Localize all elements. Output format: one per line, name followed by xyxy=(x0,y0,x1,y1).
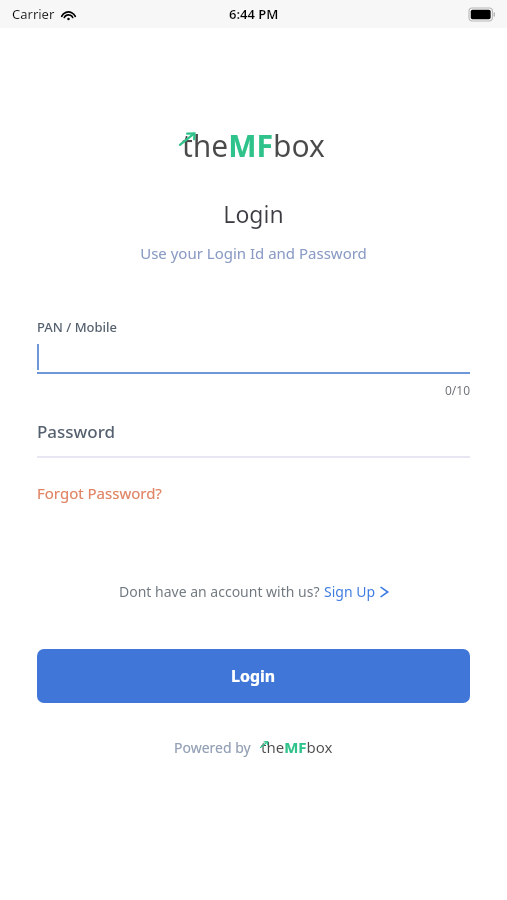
button[interactable]: Login xyxy=(37,649,470,703)
staticText: Carrier xyxy=(12,5,55,23)
button[interactable]: Password xyxy=(37,414,470,448)
staticText: theMFbox xyxy=(261,737,333,757)
staticText: Login xyxy=(0,198,507,229)
button[interactable] xyxy=(37,342,470,372)
staticText: Password xyxy=(37,420,116,443)
staticText: Login xyxy=(231,665,276,687)
staticText: 0/10 xyxy=(37,382,470,398)
button[interactable]: Dont have an account with us? xyxy=(0,578,507,605)
staticText: Sign Up xyxy=(324,582,376,601)
staticText: Use your Login Id and Password xyxy=(0,243,507,263)
staticText: Dont have an account with us? xyxy=(119,582,324,601)
staticText: PAN / Mobile xyxy=(37,318,118,336)
staticText: 6:44 PM xyxy=(229,5,279,23)
button[interactable]: Forgot Password? xyxy=(37,481,162,505)
staticText: theMFbox xyxy=(182,125,325,166)
staticText: Powered by xyxy=(174,738,251,757)
